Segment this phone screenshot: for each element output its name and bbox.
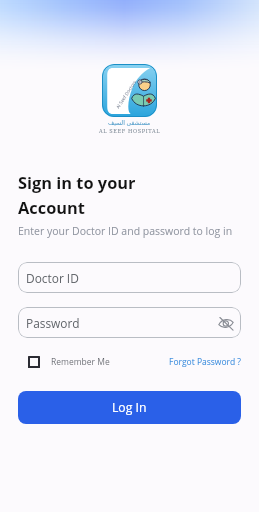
staticText: Sign in to your Account — [18, 171, 136, 218]
staticText: Doctor ID — [26, 270, 79, 286]
staticText: Forgot Password ? — [169, 356, 241, 368]
button[interactable]: Log In — [18, 391, 241, 424]
staticText: Remember Me — [51, 356, 110, 368]
staticText: Password — [26, 315, 80, 331]
button[interactable]: Forgot Password ? — [169, 356, 241, 368]
staticText: Enter your Doctor ID and password to log… — [18, 224, 233, 238]
button[interactable]: Doctor ID — [18, 262, 241, 293]
staticText: مستشفى السيف — [108, 119, 151, 127]
staticText: AL SEEF HOSPITAL — [99, 128, 161, 134]
button[interactable]: Password — [18, 307, 241, 338]
button[interactable]: Remember Me — [18, 356, 110, 368]
button[interactable]: Show password — [216, 314, 235, 332]
staticText: Al Seef Doctors — [114, 79, 137, 110]
staticText: Log In — [112, 399, 147, 416]
